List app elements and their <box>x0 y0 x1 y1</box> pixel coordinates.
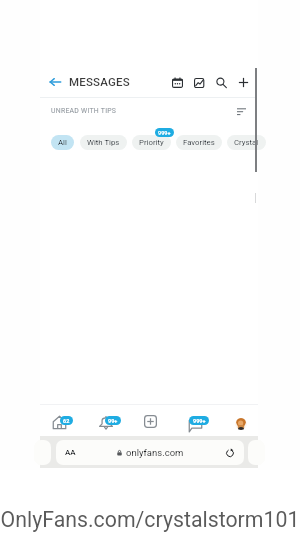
button[interactable]: Back <box>46 73 64 91</box>
staticText: onlyfans.com <box>126 447 184 458</box>
button[interactable]: AA <box>56 440 244 465</box>
button[interactable]: Reload <box>224 447 236 459</box>
button[interactable]: Favorites <box>176 135 222 150</box>
button[interactable]: New message <box>235 74 251 90</box>
button[interactable]: Profile <box>228 410 254 436</box>
staticText: UNREAD WITH TIPS <box>51 107 117 115</box>
staticText: OnlyFans.com/crystalstorm101 <box>0 507 300 532</box>
staticText: 99+ <box>108 418 118 424</box>
button[interactable]: Crystal <box>227 135 266 150</box>
button[interactable]: All <box>51 135 74 150</box>
button[interactable]: With Tips <box>80 135 127 150</box>
staticText: Crystal <box>234 138 259 147</box>
staticText: Favorites <box>183 138 215 147</box>
button[interactable]: New post <box>137 410 163 436</box>
button[interactable]: Priority <box>132 135 171 150</box>
button[interactable]: Home <box>52 410 78 436</box>
staticText: 999+ <box>193 418 206 424</box>
button[interactable]: Calendar <box>169 74 185 90</box>
button[interactable]: Sort <box>234 104 248 118</box>
button[interactable]: Statistics <box>191 74 207 90</box>
staticText: AA <box>65 448 76 457</box>
staticText: Priority <box>139 138 164 147</box>
button[interactable]: Search <box>213 74 229 90</box>
staticText: With Tips <box>87 138 120 147</box>
staticText: 999+ <box>158 130 171 136</box>
staticText: All <box>58 138 67 147</box>
staticText: MESSAGES <box>69 75 130 88</box>
button[interactable]: Notifications <box>98 410 124 436</box>
button[interactable]: Messages <box>187 410 213 436</box>
staticText: 62 <box>63 418 70 424</box>
